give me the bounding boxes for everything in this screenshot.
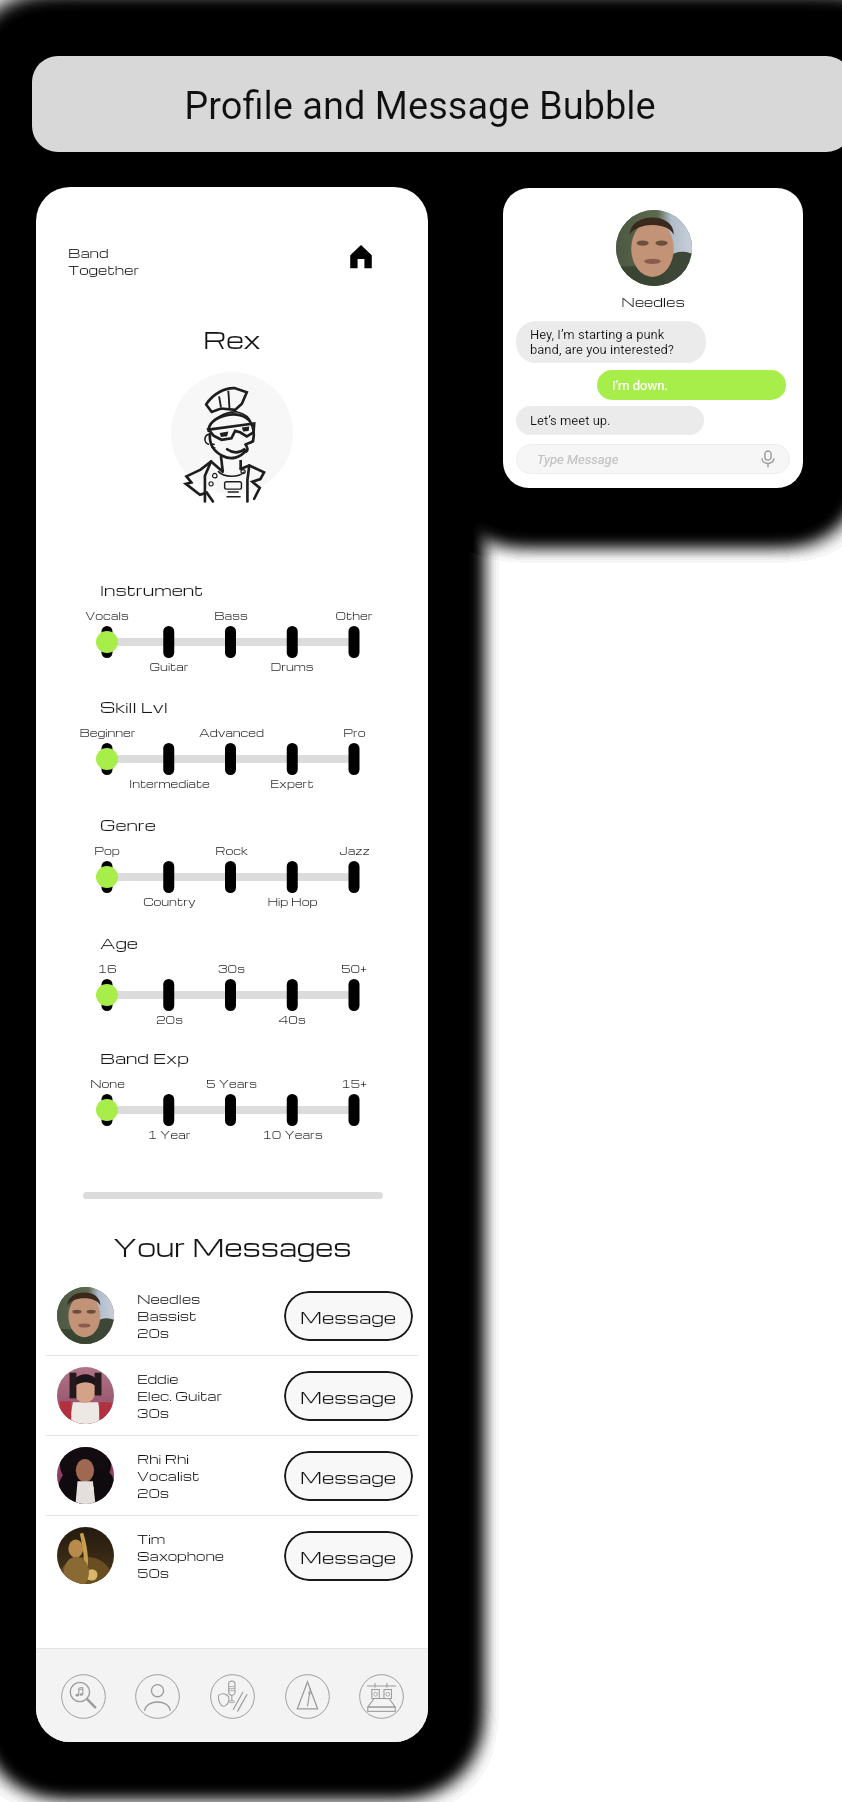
button[interactable]: Hey, I’m starting a punk band, are you i… [530,321,706,363]
staticText: 15+ [341,1076,367,1090]
staticText: Needles [503,293,803,310]
staticText: Band Together [68,244,140,278]
staticText: Pop [94,843,120,857]
staticText: Intermediate [129,776,210,790]
button[interactable]: Metronome [279,1668,335,1724]
staticText: Guitar [149,659,189,673]
staticText: Beginner [79,725,136,739]
staticText: 20s [156,1012,183,1026]
staticText: None [90,1076,125,1090]
staticText: Your Messages [36,1230,428,1263]
staticText: Saxophone [137,1547,224,1564]
staticText: Needles [137,1290,201,1307]
button[interactable]: Profile and Message Bubble [32,56,842,152]
button[interactable]: Home [343,238,379,274]
staticText: 1 Year [147,1127,191,1141]
staticText: Vocals [85,608,129,622]
staticText: 40s [278,1012,306,1026]
button[interactable]: Tim [36,1516,428,1595]
staticText: 5 Years [206,1076,257,1090]
staticText: Type Message [537,452,619,467]
button[interactable]: Voice input [759,450,777,468]
button[interactable]: I’m down. [612,370,786,400]
button[interactable]: Message [284,1531,413,1581]
button[interactable]: Search music [55,1668,111,1724]
button[interactable]: Needles [36,1276,428,1355]
button[interactable]: Let’s meet up. [530,406,704,435]
staticText: 20s [137,1324,170,1341]
staticText: Expert [270,776,314,790]
staticText: Bassist [137,1307,197,1324]
button[interactable]: Eddie [36,1356,428,1435]
staticText: 30s [137,1404,170,1421]
staticText: Tim [137,1530,166,1547]
button[interactable]: Gigs [353,1668,409,1724]
button[interactable]: Profile [129,1668,185,1724]
staticText: Profile and Message Bubble [32,84,808,129]
staticText: 10 Years [262,1127,323,1141]
staticText: 30s [218,961,245,975]
staticText: Advanced [199,725,264,739]
staticText: Band Exp [100,1047,189,1068]
staticText: Country [143,894,196,908]
staticText: Jazz [339,843,370,857]
staticText: 16 [97,961,117,975]
staticText: Rex [36,322,428,355]
staticText: Bass [214,608,248,622]
staticText: Hip Hop [267,894,318,908]
staticText: Vocalist [137,1467,200,1484]
button[interactable]: Type Message [537,444,777,474]
staticText: Message [300,1465,397,1488]
staticText: Age [100,932,138,953]
button[interactable]: Rhi Rhi [36,1436,428,1515]
staticText: Message [300,1385,397,1408]
staticText: 50+ [341,961,367,975]
staticText: Elec. Guitar [137,1387,223,1404]
staticText: Hey, I’m starting a punk band, are you i… [530,327,674,357]
button[interactable]: Message [284,1291,413,1341]
button[interactable]: Instruments [204,1668,260,1724]
staticText: Instrument [100,579,204,600]
staticText: Skill Lvl [100,696,168,717]
staticText: Rhi Rhi [137,1450,189,1467]
staticText: Rock [215,843,248,857]
staticText: Genre [100,814,156,835]
staticText: Eddie [137,1370,179,1387]
staticText: I’m down. [612,378,668,393]
staticText: Other [335,608,373,622]
button[interactable]: Message [284,1371,413,1421]
button[interactable]: Message [284,1451,413,1501]
staticText: Message [300,1305,397,1328]
staticText: Drums [270,659,314,673]
staticText: Let’s meet up. [530,413,611,428]
staticText: 20s [137,1484,170,1501]
staticText: 50s [137,1564,170,1581]
staticText: Pro [343,725,366,739]
staticText: Message [300,1545,397,1568]
